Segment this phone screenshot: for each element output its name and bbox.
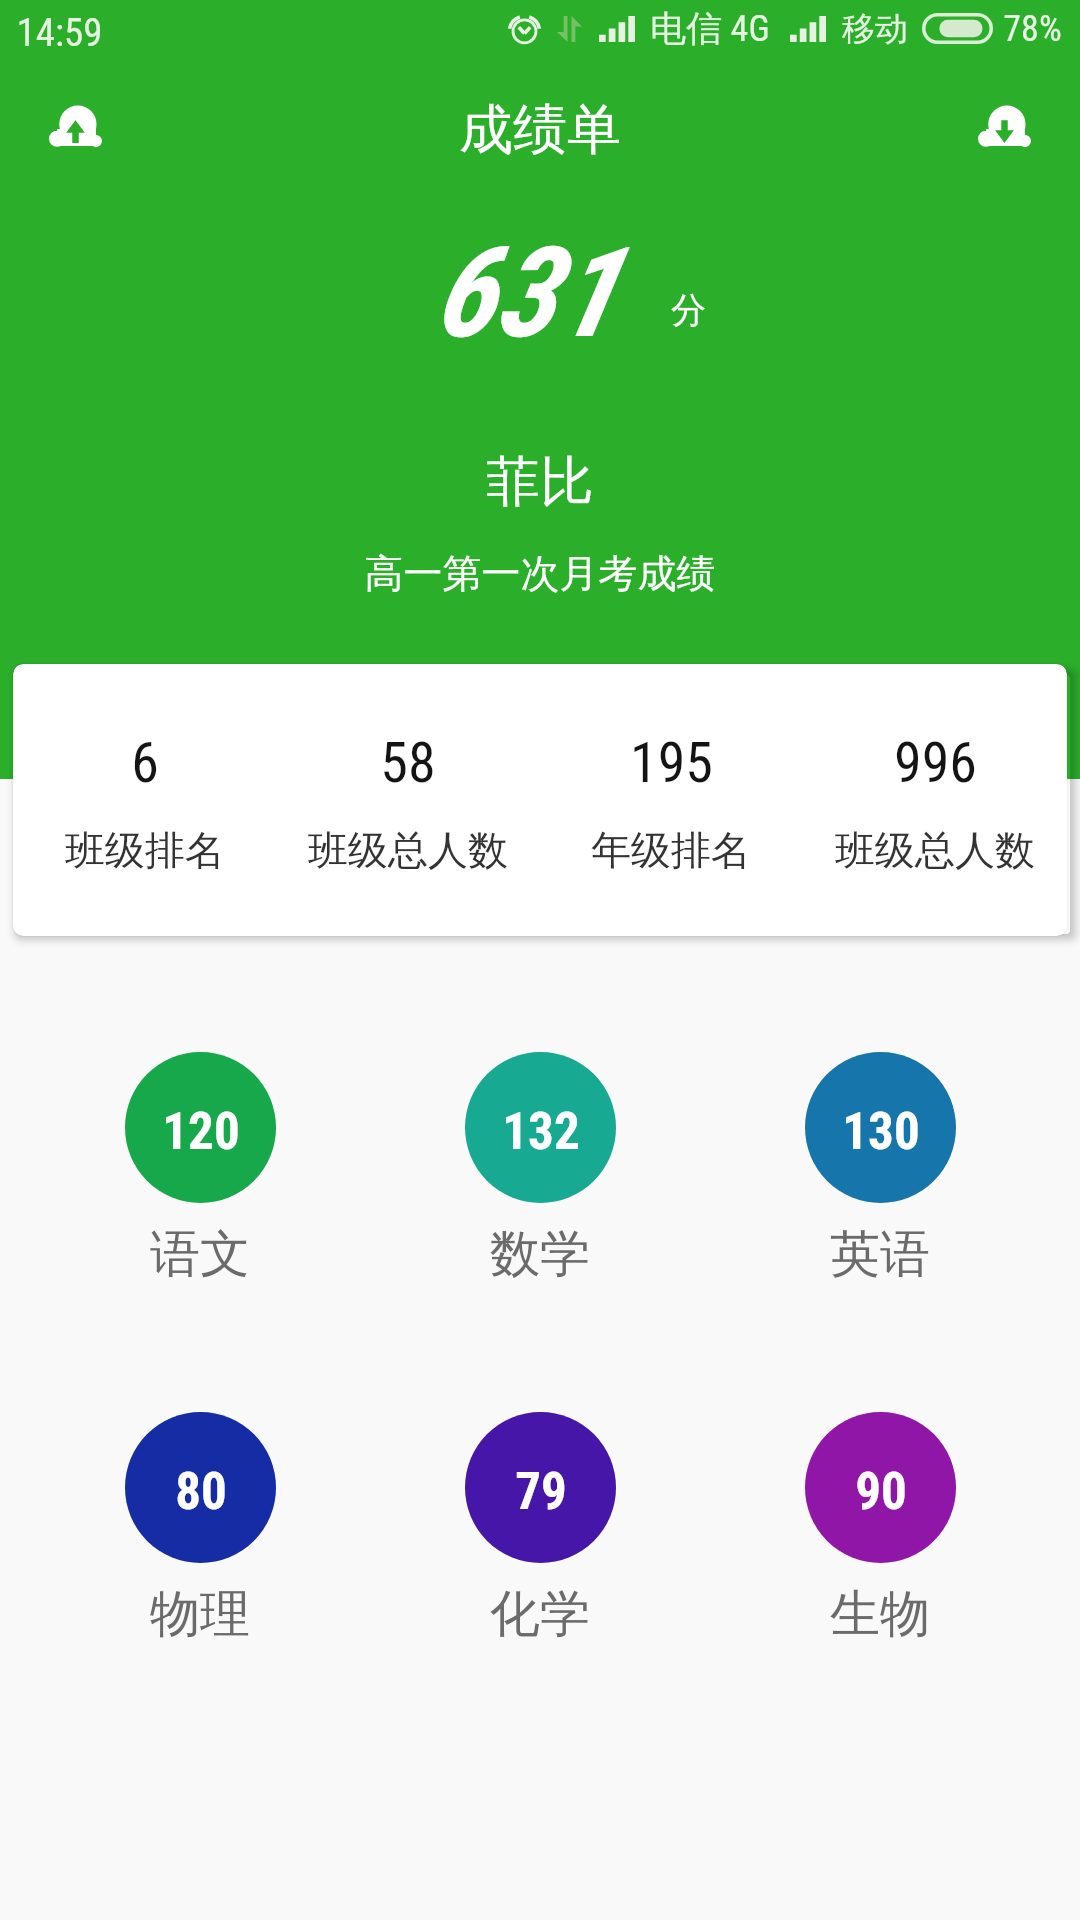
staticText: 高一第一次月考成绩 (0, 549, 1080, 598)
button[interactable]: 132 (465, 1052, 616, 1203)
staticText: 菲比 (0, 448, 1080, 516)
staticText: 195 (630, 730, 713, 796)
button[interactable]: 120 (125, 1052, 276, 1203)
staticText: 化学 (490, 1583, 590, 1646)
staticText: 移动 (842, 8, 908, 50)
staticText: 语文 (150, 1223, 250, 1286)
staticText: 90 (855, 1462, 907, 1522)
staticText: 78% (1003, 8, 1062, 50)
staticText: 数学 (490, 1223, 590, 1286)
staticText: 996 (894, 730, 977, 796)
staticText: 生物 (830, 1583, 930, 1646)
staticText: 6 (131, 730, 159, 796)
staticText: 58 (380, 730, 436, 796)
button[interactable]: 90 (805, 1412, 956, 1563)
button[interactable]: 80 (125, 1412, 276, 1563)
staticText: 132 (502, 1102, 580, 1162)
staticText: 物理 (150, 1583, 250, 1646)
staticText: 130 (842, 1102, 920, 1162)
staticText: 电信 4G (650, 6, 770, 51)
staticText: 80 (175, 1462, 227, 1522)
staticText: 年级排名 (591, 825, 751, 875)
staticText: 分 (671, 288, 706, 332)
button[interactable]: 130 (805, 1052, 956, 1203)
staticText: 班级总人数 (308, 825, 508, 875)
staticText: 79 (515, 1462, 567, 1522)
button[interactable]: Upload (35, 86, 115, 166)
staticText: 120 (162, 1102, 240, 1162)
staticText: 631 (433, 220, 618, 366)
staticText: 英语 (830, 1223, 930, 1286)
staticText: 14:59 (16, 10, 103, 56)
staticText: 班级总人数 (835, 825, 1035, 875)
staticText: 班级排名 (65, 825, 225, 875)
button[interactable]: 79 (465, 1412, 616, 1563)
staticText: 成绩单 (459, 96, 621, 164)
button[interactable]: Download (964, 86, 1044, 166)
